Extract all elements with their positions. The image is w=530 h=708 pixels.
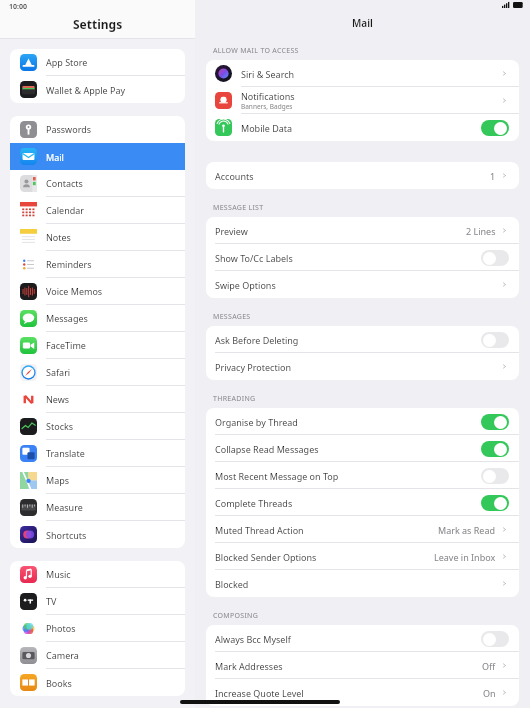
staticText: Translate bbox=[46, 447, 85, 459]
button[interactable]: Off bbox=[481, 332, 509, 348]
button[interactable]: Swipe Options bbox=[206, 271, 519, 298]
button[interactable]: Safari bbox=[10, 359, 185, 386]
button[interactable]: Music bbox=[10, 561, 185, 588]
button[interactable]: Notifications bbox=[206, 87, 519, 114]
button[interactable]: On bbox=[481, 414, 509, 430]
staticText: Blocked bbox=[215, 578, 249, 590]
staticText: Wallet & Apple Pay bbox=[46, 84, 126, 96]
button[interactable]: Messages bbox=[10, 305, 185, 332]
button[interactable]: Maps bbox=[10, 467, 185, 494]
staticText: Muted Thread Action bbox=[215, 524, 304, 536]
button[interactable]: Calendar bbox=[10, 197, 185, 224]
staticText: Privacy Protection bbox=[215, 361, 292, 373]
staticText: Shortcuts bbox=[46, 529, 87, 541]
button[interactable]: FaceTime bbox=[10, 332, 185, 359]
staticText: 2 Lines bbox=[466, 225, 496, 237]
button[interactable]: Off bbox=[481, 250, 509, 266]
button[interactable]: Off bbox=[481, 468, 509, 484]
staticText: Photos bbox=[46, 622, 76, 634]
staticText: Increase Quote Level bbox=[215, 687, 304, 699]
button[interactable]: Camera bbox=[10, 642, 185, 669]
button[interactable]: Wallet & Apple Pay bbox=[10, 76, 185, 103]
staticText: Stocks bbox=[46, 420, 74, 432]
staticText: Blocked Sender Options bbox=[215, 551, 317, 563]
staticText: Contacts bbox=[46, 177, 83, 189]
button[interactable]: Collapse Read Messages bbox=[206, 435, 519, 462]
button[interactable]: Accounts bbox=[206, 162, 519, 189]
staticText: Siri & Search bbox=[241, 68, 295, 80]
button[interactable]: Privacy Protection bbox=[206, 353, 519, 380]
staticText: Measure bbox=[46, 501, 83, 513]
button[interactable]: Shortcuts bbox=[10, 521, 185, 548]
staticText: Always Bcc Myself bbox=[215, 633, 291, 645]
staticText: Swipe Options bbox=[215, 279, 276, 291]
staticText: TV bbox=[46, 595, 57, 607]
button[interactable]: Mail bbox=[10, 143, 185, 170]
button[interactable]: Reminders bbox=[10, 251, 185, 278]
button[interactable]: TV bbox=[10, 588, 185, 615]
staticText: Preview bbox=[215, 225, 248, 237]
staticText: News bbox=[46, 393, 70, 405]
button[interactable]: Measure bbox=[10, 494, 185, 521]
button[interactable]: Muted Thread Action bbox=[206, 516, 519, 543]
staticText: Most Recent Message on Top bbox=[215, 470, 339, 482]
button[interactable]: Books bbox=[10, 669, 185, 696]
button[interactable]: On bbox=[481, 495, 509, 511]
staticText: Reminders bbox=[46, 258, 92, 270]
button[interactable]: Preview bbox=[206, 217, 519, 244]
staticText: THREADING bbox=[213, 394, 256, 404]
button[interactable]: Translate bbox=[10, 440, 185, 467]
staticText: Accounts bbox=[215, 170, 254, 182]
staticText: Mark as Read bbox=[438, 524, 496, 536]
button[interactable]: Mark Addresses bbox=[206, 652, 519, 679]
staticText: Messages bbox=[46, 312, 88, 324]
button[interactable]: Off bbox=[481, 631, 509, 647]
staticText: Ask Before Deleting bbox=[215, 334, 299, 346]
button[interactable]: On bbox=[481, 120, 509, 136]
staticText: App Store bbox=[46, 56, 88, 68]
button[interactable]: Increase Quote Level bbox=[206, 679, 519, 706]
staticText: Settings bbox=[73, 16, 123, 32]
staticText: Organise by Thread bbox=[215, 416, 298, 428]
staticText: Mobile Data bbox=[241, 122, 293, 134]
staticText: Notes bbox=[46, 231, 71, 243]
staticText: Music bbox=[46, 568, 71, 580]
staticText: Show To/Cc Labels bbox=[215, 252, 293, 264]
staticText: Complete Threads bbox=[215, 497, 293, 509]
button[interactable]: Always Bcc Myself bbox=[206, 625, 519, 652]
staticText: Safari bbox=[46, 366, 71, 378]
button[interactable]: Voice Memos bbox=[10, 278, 185, 305]
staticText: Passwords bbox=[46, 123, 92, 135]
button[interactable]: Blocked bbox=[206, 570, 519, 597]
staticText: ALLOW MAIL TO ACCESS bbox=[213, 46, 299, 56]
staticText: Voice Memos bbox=[46, 285, 103, 297]
button[interactable]: Photos bbox=[10, 615, 185, 642]
button[interactable]: Ask Before Deleting bbox=[206, 326, 519, 353]
button[interactable]: Most Recent Message on Top bbox=[206, 462, 519, 489]
staticText: Calendar bbox=[46, 204, 84, 216]
button[interactable]: Organise by Thread bbox=[206, 408, 519, 435]
staticText: Off bbox=[482, 660, 496, 672]
staticText: Mail bbox=[46, 151, 64, 163]
button[interactable]: Mobile Data bbox=[206, 114, 519, 141]
staticText: Leave in Inbox bbox=[434, 551, 496, 563]
staticText: Mail bbox=[352, 16, 373, 30]
button[interactable]: App Store bbox=[10, 49, 185, 76]
staticText: 10:00 bbox=[9, 2, 27, 12]
button[interactable]: Blocked Sender Options bbox=[206, 543, 519, 570]
button[interactable]: Stocks bbox=[10, 413, 185, 440]
button[interactable]: Show To/Cc Labels bbox=[206, 244, 519, 271]
staticText: Books bbox=[46, 677, 72, 689]
button[interactable]: Passwords bbox=[10, 116, 185, 143]
button[interactable]: On bbox=[481, 441, 509, 457]
staticText: On bbox=[483, 687, 496, 699]
button[interactable]: Notes bbox=[10, 224, 185, 251]
button[interactable]: Siri & Search bbox=[206, 60, 519, 87]
staticText: Notifications bbox=[241, 90, 295, 102]
staticText: COMPOSING bbox=[213, 611, 259, 621]
staticText: Banners, Badges bbox=[241, 102, 293, 111]
button[interactable]: Contacts bbox=[10, 170, 185, 197]
button[interactable]: News bbox=[10, 386, 185, 413]
button[interactable]: Complete Threads bbox=[206, 489, 519, 516]
staticText: Mark Addresses bbox=[215, 660, 283, 672]
